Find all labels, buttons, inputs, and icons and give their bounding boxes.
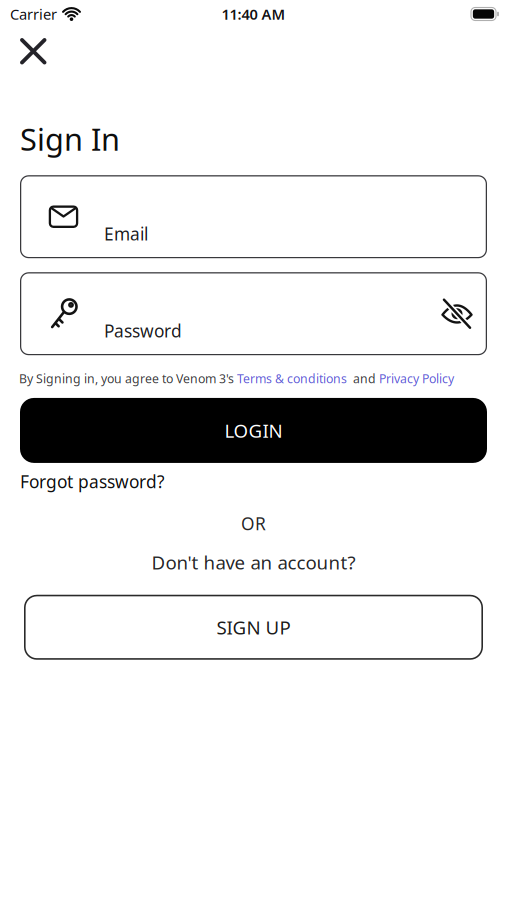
staticText: Password <box>104 319 182 342</box>
staticText: OR <box>241 512 266 535</box>
button[interactable]: Forgot password? <box>20 470 165 493</box>
staticText: By Signing in, you agree to Venom 3's <box>19 370 237 387</box>
staticText: Terms & conditions <box>237 370 347 387</box>
staticText: Email <box>104 222 148 245</box>
staticText: Sign In <box>20 118 120 159</box>
button[interactable]: Terms & conditions <box>237 370 347 387</box>
button[interactable]: Show password <box>441 300 487 328</box>
button[interactable]: SIGN UP <box>24 595 483 660</box>
staticText: LOGIN <box>224 418 282 443</box>
staticText: SIGN UP <box>216 615 290 640</box>
staticText: Forgot password? <box>20 470 165 493</box>
staticText: Don't have an account? <box>151 550 355 575</box>
staticText: and <box>347 370 379 387</box>
staticText: Privacy Policy <box>379 370 454 387</box>
button[interactable]: Password <box>20 272 487 355</box>
button[interactable]: LOGIN <box>20 398 487 463</box>
button[interactable]: Email <box>20 175 487 258</box>
button[interactable]: Close <box>0 28 44 62</box>
staticText: Carrier <box>10 4 57 24</box>
staticText: 11:40 AM <box>221 4 285 24</box>
button[interactable]: Privacy Policy <box>379 370 454 387</box>
